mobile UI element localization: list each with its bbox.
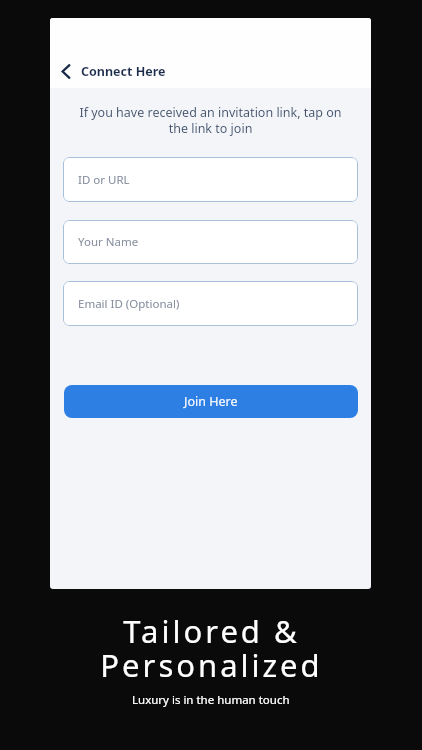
button[interactable]: Join Here xyxy=(64,385,358,418)
button[interactable]: ID or URL xyxy=(63,157,358,202)
staticText: ID or URL xyxy=(78,172,130,188)
staticText: Tailored & Personalized xyxy=(100,610,323,686)
staticText: If you have received an invitation link,… xyxy=(50,104,371,137)
staticText: Luxury is in the human touch xyxy=(132,692,290,708)
button[interactable]: Email ID (Optional) xyxy=(63,281,358,326)
staticText: Connect Here xyxy=(81,63,166,80)
button[interactable]: Connect Here xyxy=(60,63,166,80)
staticText: Email ID (Optional) xyxy=(78,296,180,312)
staticText: Your Name xyxy=(78,234,139,250)
staticText: Join Here xyxy=(184,393,238,410)
button[interactable]: Your Name xyxy=(63,220,358,264)
